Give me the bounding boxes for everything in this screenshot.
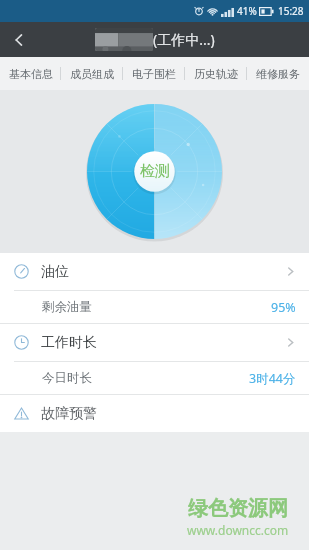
button[interactable]: 工作时长 bbox=[0, 324, 309, 361]
staticText: 油位 bbox=[41, 263, 69, 281]
staticText: 电子围栏 bbox=[132, 67, 176, 81]
button[interactable]: Back bbox=[0, 22, 38, 57]
staticText: 基本信息 bbox=[9, 67, 53, 81]
button[interactable]: 油位 bbox=[0, 253, 309, 290]
button[interactable]: 维修服务 bbox=[247, 57, 309, 90]
button[interactable]: 今日时长 bbox=[0, 362, 309, 394]
staticText: 95% bbox=[271, 299, 296, 316]
button[interactable]: 电子围栏 bbox=[123, 57, 185, 90]
staticText: 3时44分 bbox=[249, 370, 296, 387]
button[interactable]: 基本信息 bbox=[0, 57, 61, 90]
staticText: 维修服务 bbox=[256, 67, 300, 81]
staticText: (工作中...) bbox=[153, 30, 215, 49]
staticText: 成员组成 bbox=[70, 67, 114, 81]
staticText: 历史轨迹 bbox=[194, 67, 238, 81]
staticText: 检测 bbox=[140, 162, 170, 181]
button[interactable]: 故障预警 bbox=[0, 395, 309, 432]
staticText: 工作时长 bbox=[41, 334, 97, 352]
button[interactable]: 历史轨迹 bbox=[185, 57, 247, 90]
button[interactable]: 剩余油量 bbox=[0, 291, 309, 323]
button[interactable]: 成员组成 bbox=[61, 57, 123, 90]
staticText: 今日时长 bbox=[42, 370, 92, 386]
button[interactable]: 检测 bbox=[86, 103, 223, 240]
staticText: 15:28 bbox=[278, 4, 304, 18]
staticText: www.downcc.com bbox=[187, 522, 289, 538]
staticText: 41% bbox=[237, 4, 257, 18]
staticText: 剩余油量 bbox=[42, 299, 92, 315]
staticText: 故障预警 bbox=[41, 405, 97, 423]
staticText: 绿色资源网 bbox=[188, 496, 288, 521]
